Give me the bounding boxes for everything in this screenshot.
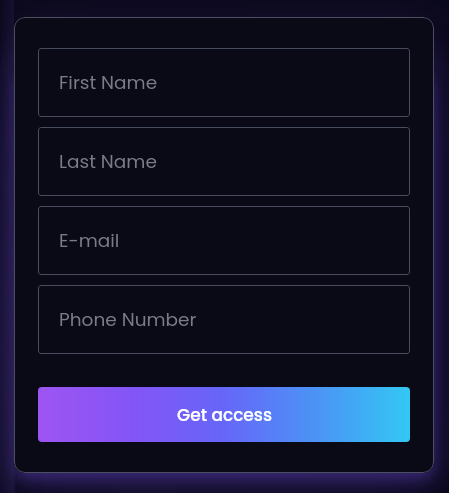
button[interactable]: Get access xyxy=(38,387,410,442)
staticText: Last Name xyxy=(59,149,157,175)
staticText: E-mail xyxy=(59,228,120,254)
button[interactable]: Last Name xyxy=(38,127,410,196)
staticText: Get access xyxy=(177,403,272,427)
staticText: First Name xyxy=(59,70,158,96)
button[interactable]: E-mail xyxy=(38,206,410,275)
button[interactable]: Phone Number xyxy=(38,285,410,354)
button[interactable]: First Name xyxy=(38,48,410,117)
staticText: Phone Number xyxy=(59,307,197,333)
